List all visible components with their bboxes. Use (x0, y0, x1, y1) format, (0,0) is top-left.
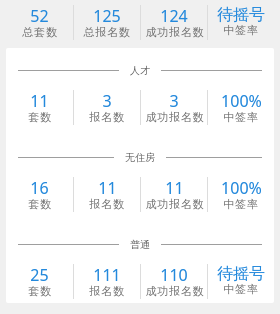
staticText: 111 (93, 264, 121, 286)
staticText: 11 (30, 90, 49, 112)
staticText: 套数 (28, 197, 52, 211)
staticText: 人才 (130, 64, 150, 77)
button[interactable]: 人才 (6, 60, 274, 126)
staticText: 100% (221, 177, 262, 199)
staticText: 11 (165, 177, 184, 199)
staticText: 100% (221, 90, 262, 112)
staticText: 3 (102, 90, 112, 112)
button[interactable]: 52 (6, 0, 274, 48)
staticText: 124 (160, 5, 188, 27)
staticText: 待摇号 (217, 264, 265, 284)
button[interactable]: 无住房 (6, 147, 274, 213)
staticText: 无住房 (125, 151, 155, 164)
staticText: 中签率 (223, 110, 259, 124)
staticText: 报名数 (89, 110, 125, 124)
staticText: 报名数 (89, 284, 125, 298)
staticText: 125 (93, 5, 121, 27)
staticText: 11 (98, 177, 117, 199)
staticText: 110 (160, 264, 188, 286)
staticText: 套数 (28, 284, 52, 298)
button[interactable]: 普通 (6, 234, 274, 300)
staticText: 3 (169, 90, 179, 112)
staticText: 普通 (130, 238, 150, 251)
staticText: 中签率 (223, 197, 259, 211)
staticText: 总套数 (22, 25, 58, 39)
staticText: 52 (30, 5, 49, 27)
staticText: 套数 (28, 110, 52, 124)
staticText: 待摇号 (217, 5, 265, 25)
staticText: 中签率 (223, 23, 259, 37)
staticText: 16 (30, 177, 49, 199)
staticText: 报名数 (89, 197, 125, 211)
staticText: 成功报名数 (145, 197, 204, 211)
staticText: 总报名数 (83, 25, 131, 39)
staticText: 中签率 (223, 282, 259, 296)
staticText: 成功报名数 (145, 110, 204, 124)
staticText: 成功报名数 (145, 284, 204, 298)
staticText: 成功报名数 (145, 25, 204, 39)
staticText: 25 (30, 264, 49, 286)
